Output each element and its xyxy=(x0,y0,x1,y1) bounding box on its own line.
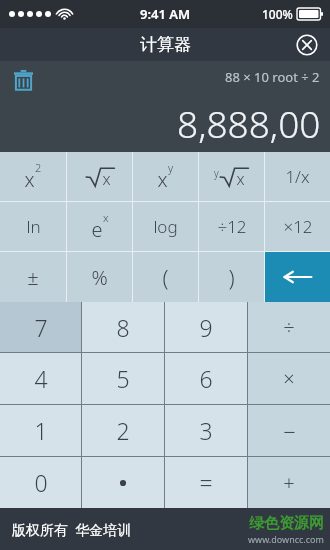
button[interactable]: 0 xyxy=(0,457,81,508)
button[interactable]: ln xyxy=(0,202,66,251)
button[interactable]: ) xyxy=(199,252,264,302)
staticText: www.downcc.com xyxy=(248,533,324,545)
staticText: 版权所有 华金培训 xyxy=(12,520,132,539)
button[interactable]: 8 xyxy=(82,302,164,352)
button[interactable]: x xyxy=(0,152,66,201)
button[interactable]: y xyxy=(199,152,264,201)
staticText: × xyxy=(283,365,295,392)
button[interactable]: = xyxy=(165,457,247,508)
button[interactable]: ×12 xyxy=(265,202,330,251)
staticText: 8 xyxy=(116,312,130,343)
staticText: 2 xyxy=(35,160,42,175)
button[interactable]: + xyxy=(248,457,330,508)
button[interactable]: 5 xyxy=(82,353,164,404)
staticText: 1 xyxy=(34,415,48,446)
button[interactable]: 4 xyxy=(0,353,81,404)
staticText: 5 xyxy=(116,363,130,394)
button[interactable]: ÷12 xyxy=(199,202,264,251)
staticText: ln xyxy=(26,215,41,238)
staticText: ÷12 xyxy=(217,215,247,238)
button[interactable]: ( xyxy=(133,252,198,302)
button[interactable]: Clear xyxy=(10,67,36,93)
staticText: ) xyxy=(228,262,235,292)
staticText: ( xyxy=(162,262,169,292)
button[interactable]: 7 xyxy=(0,302,81,352)
staticText: ÷ xyxy=(283,314,295,341)
staticText: x xyxy=(103,210,109,225)
button[interactable]: 6 xyxy=(165,353,247,404)
button[interactable]: % xyxy=(67,252,132,302)
button[interactable]: log xyxy=(133,202,198,251)
button[interactable]: 1/x xyxy=(265,152,330,201)
button[interactable] xyxy=(82,457,164,508)
button[interactable]: e xyxy=(67,202,132,251)
staticText: 1/x xyxy=(285,165,310,188)
staticText: ± xyxy=(27,264,39,291)
staticText: e xyxy=(91,216,103,243)
button[interactable]: − xyxy=(248,405,330,456)
button[interactable]: x xyxy=(133,152,198,201)
button[interactable]: ÷ xyxy=(248,302,330,352)
button[interactable]: ± xyxy=(0,252,66,302)
button[interactable]: 1 xyxy=(0,405,81,456)
staticText: 4 xyxy=(34,363,48,394)
staticText: + xyxy=(283,469,295,496)
staticText: y xyxy=(214,166,219,180)
button[interactable]: × xyxy=(248,353,330,404)
staticText: x xyxy=(24,166,35,193)
staticText: 9 xyxy=(199,312,213,343)
staticText: x xyxy=(157,166,168,193)
staticText: 9:41 AM xyxy=(140,5,191,23)
staticText: = xyxy=(199,467,213,498)
staticText: − xyxy=(283,416,296,446)
staticText: 3 xyxy=(199,415,213,446)
staticText: 7 xyxy=(34,312,48,343)
button[interactable]: Close xyxy=(296,34,318,56)
staticText: x xyxy=(102,168,111,190)
staticText: log xyxy=(153,215,178,238)
staticText: 6 xyxy=(199,363,213,394)
staticText: 0 xyxy=(34,467,48,498)
staticText: ×12 xyxy=(283,215,313,238)
staticText: 绿色资源网 xyxy=(249,514,324,533)
button[interactable]: 3 xyxy=(165,405,247,456)
staticText: x xyxy=(236,168,245,190)
staticText: 2 xyxy=(116,415,130,446)
staticText: % xyxy=(91,264,108,291)
button[interactable]: Backspace xyxy=(265,252,330,302)
button[interactable]: 9 xyxy=(165,302,247,352)
button[interactable]: x xyxy=(67,152,132,201)
staticText: 8,888,00 xyxy=(177,98,321,148)
button[interactable]: 2 xyxy=(82,405,164,456)
staticText: 计算器 xyxy=(140,34,191,55)
staticText: y xyxy=(168,160,174,175)
staticText: 88 × 10 root ÷ 2 xyxy=(225,68,320,86)
staticText: 100% xyxy=(262,6,293,22)
